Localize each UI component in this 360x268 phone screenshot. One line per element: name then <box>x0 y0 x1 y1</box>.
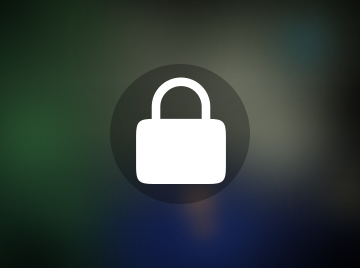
button[interactable]: Unlock <box>110 64 250 204</box>
